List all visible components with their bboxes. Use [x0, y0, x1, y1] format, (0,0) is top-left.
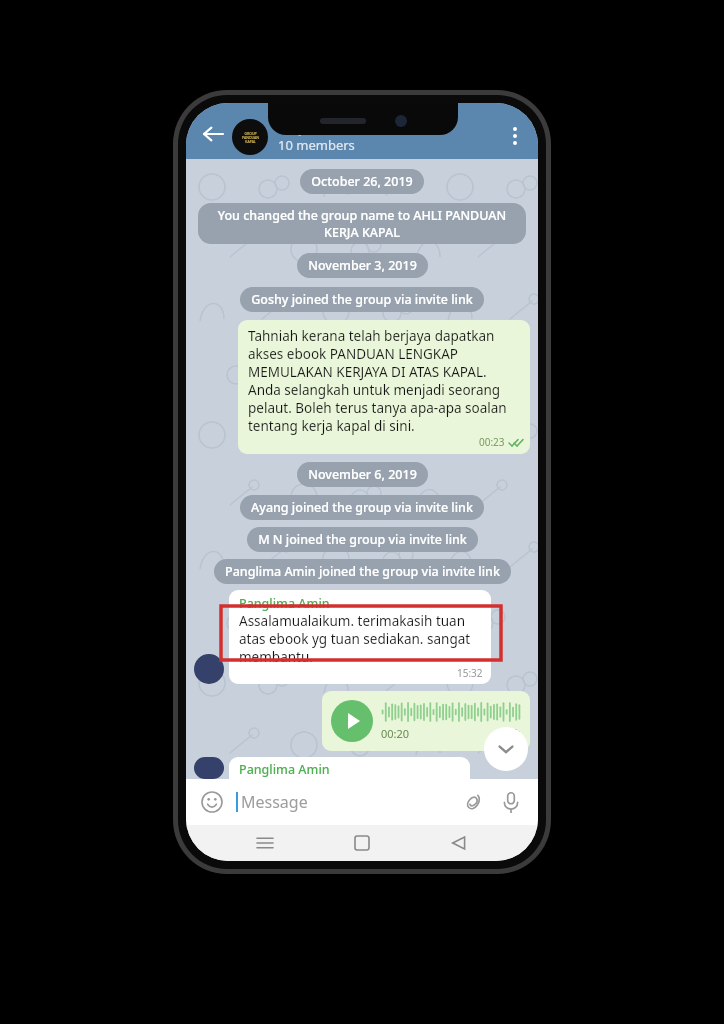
- button[interactable]: More options: [498, 119, 532, 153]
- button[interactable]: Panglima Amin: [229, 757, 470, 779]
- button[interactable]: Home: [344, 825, 380, 861]
- staticText: Panglima Amin: [239, 595, 330, 612]
- button[interactable]: November 3, 2019: [297, 253, 428, 278]
- staticText: GROUP PANDUAN KAPAL: [242, 131, 259, 144]
- button[interactable]: October 26, 2019: [300, 169, 424, 194]
- button[interactable]: Play voice message: [331, 700, 373, 742]
- button[interactable]: Back: [194, 115, 232, 153]
- button[interactable]: Attach: [458, 787, 488, 817]
- button[interactable]: M N joined the group via invite link: [247, 527, 478, 552]
- staticText: November 3, 2019: [308, 257, 417, 274]
- staticText: Tahniah kerana telah berjaya dapatkan ak…: [248, 327, 522, 435]
- staticText: Message: [241, 791, 308, 813]
- button[interactable]: Ayang joined the group via invite link: [240, 495, 484, 520]
- button[interactable]: Panglima Amin: [229, 590, 491, 684]
- staticText: You changed the group name to AHLI PANDU…: [209, 207, 515, 240]
- button[interactable]: Tahniah kerana telah berjaya dapatkan ak…: [238, 320, 530, 454]
- button[interactable]: Emoji: [198, 788, 226, 816]
- staticText: 00:23: [479, 435, 505, 449]
- button[interactable]: Voice message: [496, 787, 526, 817]
- staticText: 15:32: [457, 666, 483, 680]
- staticText: Goshy joined the group via invite link: [251, 291, 473, 308]
- button[interactable]: Play voice message: [322, 691, 530, 751]
- staticText: 00:20: [381, 726, 410, 741]
- staticText: ...RJ...: [278, 116, 317, 136]
- button[interactable]: Goshy joined the group via invite link: [240, 287, 484, 312]
- button[interactable]: Scroll to bottom: [484, 727, 528, 771]
- staticText: Ayang joined the group via invite link: [251, 499, 473, 516]
- button[interactable]: Back: [441, 825, 477, 861]
- staticText: 16:: [506, 726, 521, 740]
- button[interactable]: Message: [236, 791, 458, 813]
- button[interactable]: Recents: [247, 825, 283, 861]
- staticText: November 6, 2019: [308, 466, 417, 483]
- staticText: Panglima Amin joined the group via invit…: [225, 563, 500, 580]
- button[interactable]: November 6, 2019: [297, 462, 428, 487]
- staticText: Assalamualaikum. terimakasih tuan atas e…: [239, 612, 483, 666]
- staticText: M N joined the group via invite link: [258, 531, 467, 548]
- button[interactable]: Panglima Amin joined the group via invit…: [214, 559, 511, 584]
- button[interactable]: GROUP PANDUAN KAPAL: [232, 119, 268, 155]
- staticText: 10 members: [278, 136, 355, 154]
- staticText: October 26, 2019: [311, 173, 413, 190]
- button[interactable]: You changed the group name to AHLI PANDU…: [198, 203, 526, 244]
- staticText: Panglima Amin: [239, 761, 330, 778]
